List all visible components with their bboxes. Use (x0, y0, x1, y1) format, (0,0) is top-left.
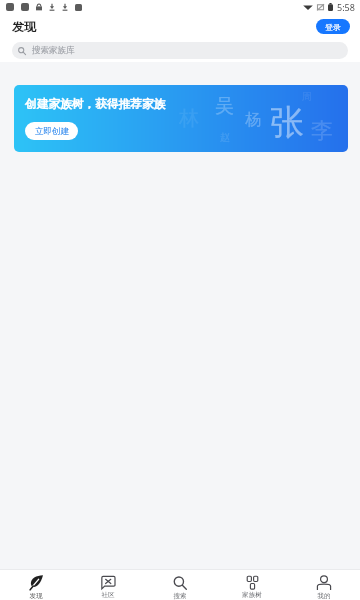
button[interactable]: Community (72, 575, 144, 600)
staticText: 搜索家族库 (32, 45, 75, 56)
staticText: 家族树 (242, 591, 262, 599)
other: Community (101, 576, 115, 589)
other: Profile (317, 576, 331, 590)
other: Family tree (247, 576, 258, 589)
button[interactable]: Profile (288, 575, 360, 600)
staticText: 杨 (245, 110, 261, 130)
other: Discover (30, 575, 43, 590)
staticText: 赵 (220, 131, 230, 144)
staticText: 周 (302, 90, 312, 103)
staticText: 吴 (215, 94, 234, 118)
button[interactable]: Discover (0, 575, 72, 600)
staticText: 社区 (101, 591, 115, 599)
other: Search (173, 576, 187, 590)
button[interactable]: 林 (14, 85, 348, 152)
staticText: 发现 (12, 19, 36, 34)
staticText: 林 (179, 106, 199, 131)
button[interactable]: 登录 (316, 19, 350, 34)
button[interactable]: Family tree (216, 575, 288, 600)
staticText: 发现 (29, 592, 43, 600)
staticText: 创建家族树，获得推荐家族 (25, 97, 166, 112)
button[interactable]: Search (144, 575, 216, 600)
staticText: 5:58 (337, 1, 355, 13)
button[interactable]: 搜索家族库 (12, 42, 348, 59)
staticText: 张 (270, 101, 304, 144)
staticText: 搜索 (173, 592, 187, 600)
staticText: 立即创建 (35, 126, 69, 137)
staticText: 李 (311, 117, 333, 145)
staticText: 我的 (317, 592, 331, 600)
button[interactable]: 立即创建 (25, 122, 78, 140)
staticText: 登录 (325, 22, 341, 32)
